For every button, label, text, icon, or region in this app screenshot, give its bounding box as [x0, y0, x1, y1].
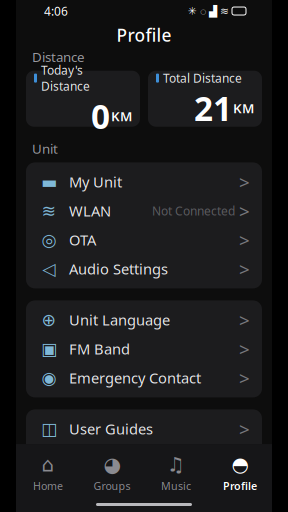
button[interactable]: ◫: [26, 414, 262, 443]
staticText: >: [239, 445, 250, 470]
staticText: >: [239, 256, 250, 281]
staticText: ◕: [103, 453, 120, 476]
staticText: ◍: [41, 477, 56, 497]
button[interactable]: ▤: [26, 443, 262, 472]
staticText: FM Band: [69, 339, 130, 359]
button[interactable]: ♫: [144, 448, 208, 498]
staticText: Support: [69, 477, 124, 497]
staticText: Distance: [32, 48, 85, 66]
staticText: Not Connected: [152, 203, 235, 219]
staticText: ⌂: [41, 453, 54, 476]
staticText: >: [239, 198, 250, 223]
staticText: Unit: [32, 140, 58, 157]
staticText: >: [239, 307, 250, 332]
staticText: Unit Language: [69, 310, 170, 330]
staticText: ▬: [41, 172, 57, 192]
staticText: ◉: [41, 368, 56, 388]
staticText: ♫: [167, 453, 185, 476]
staticText: ▣: [41, 339, 57, 359]
button[interactable]: ◍: [26, 472, 262, 501]
button[interactable]: ◓: [208, 448, 272, 498]
staticText: ◎: [41, 230, 56, 250]
staticText: Profile: [223, 479, 257, 493]
staticText: >: [239, 416, 250, 441]
staticText: ⊕: [41, 310, 56, 330]
staticText: Profile: [116, 23, 171, 46]
button[interactable]: ▬: [26, 167, 262, 196]
button[interactable]: ◎: [26, 225, 262, 254]
staticText: Emergency Contact: [69, 368, 201, 388]
staticText: ◓: [231, 453, 248, 476]
staticText: Music: [161, 479, 191, 493]
staticText: Unit Connection Guide: [69, 448, 225, 468]
staticText: ◁: [42, 259, 55, 279]
staticText: WLAN: [69, 201, 111, 221]
staticText: >: [239, 336, 250, 361]
staticText: >: [239, 227, 250, 252]
staticText: ▟: [209, 5, 217, 17]
staticText: ✳: [188, 5, 197, 17]
staticText: Audio Settings: [69, 259, 168, 279]
staticText: Total Distance: [163, 70, 242, 86]
button[interactable]: ⌂: [16, 448, 80, 498]
button[interactable]: ▣: [26, 334, 262, 363]
staticText: >: [239, 474, 250, 499]
button[interactable]: ◕: [80, 448, 144, 498]
button[interactable]: ◁: [26, 254, 262, 283]
staticText: User Guides: [69, 419, 153, 439]
staticText: KM: [111, 107, 132, 125]
staticText: >: [239, 169, 250, 194]
button[interactable]: ◉: [26, 363, 262, 392]
staticText: KM: [233, 99, 254, 117]
staticText: ▤: [41, 448, 57, 468]
staticText: ◌: [200, 4, 206, 18]
staticText: ≋: [220, 5, 229, 17]
staticText: Today's Distance: [41, 62, 90, 94]
staticText: 21: [194, 86, 232, 130]
button[interactable]: ⊕: [26, 305, 262, 334]
staticText: My Unit: [69, 172, 122, 192]
staticText: >: [239, 365, 250, 390]
staticText: ◫: [41, 419, 57, 439]
button[interactable]: ≋: [26, 196, 262, 225]
staticText: OTA: [69, 230, 96, 250]
staticText: Groups: [93, 479, 130, 493]
staticText: Home: [33, 479, 63, 493]
staticText: 0: [91, 94, 110, 138]
staticText: ≋: [41, 201, 56, 221]
staticText: 4:06: [44, 3, 68, 19]
